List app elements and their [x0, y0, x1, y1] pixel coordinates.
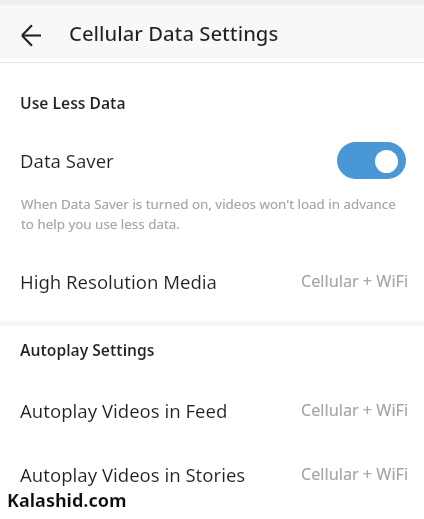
staticText: Autoplay Settings [20, 339, 155, 360]
button[interactable]: Data Saver [0, 141, 424, 179]
button[interactable]: Data Saver toggle, on [337, 142, 406, 179]
button[interactable]: Back [9, 13, 54, 58]
button[interactable]: High Resolution Media [0, 262, 424, 294]
button[interactable]: Autoplay Videos in Feed [0, 391, 424, 423]
staticText: When Data Saver is turned on, videos won… [21, 195, 396, 213]
staticText: Autoplay Videos in Stories [20, 462, 246, 487]
staticText: Cellular + WiFi [301, 463, 409, 485]
staticText: Cellular Data Settings [69, 19, 279, 47]
staticText: Cellular + WiFi [301, 399, 409, 421]
staticText: Kalashid.com [7, 488, 127, 513]
staticText: Use Less Data [20, 92, 126, 113]
staticText: Autoplay Videos in Feed [20, 398, 228, 423]
staticText: High Resolution Media [20, 269, 217, 294]
staticText: to help you use less data. [21, 215, 180, 233]
staticText: Data Saver [20, 148, 114, 173]
button[interactable]: Autoplay Videos in Stories [0, 455, 424, 487]
staticText: Cellular + WiFi [301, 270, 409, 292]
